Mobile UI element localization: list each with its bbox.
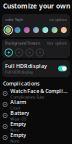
staticText: Empty: [10, 131, 26, 138]
staticText: Alarm: [10, 98, 26, 105]
button[interactable]: Watch Face & Complications: [0, 88, 72, 99]
staticText: Wear OS: [10, 116, 26, 122]
staticText: Full HDR display: [5, 69, 33, 75]
staticText: Complications Suite: [10, 94, 44, 100]
button[interactable]: Full HDR display: [58, 66, 67, 71]
button[interactable]: Empty: [0, 121, 72, 132]
staticText: color Style: [5, 17, 23, 22]
staticText: six options: [49, 17, 67, 22]
staticText: Background Texture: [5, 40, 40, 46]
staticText: Empty: [10, 120, 26, 127]
button[interactable]: Battery: [0, 110, 72, 121]
button[interactable]: Alarm: [0, 99, 72, 110]
button[interactable]: Empty: [0, 132, 72, 143]
staticText: Full HDR display: [5, 62, 47, 69]
staticText: four options: [47, 40, 67, 46]
staticText: Customize your own: [3, 2, 70, 10]
staticText: None: [10, 138, 19, 144]
staticText: None: [10, 127, 19, 133]
staticText: Watch Face & Complications: [10, 87, 67, 94]
staticText: Complications: [3, 80, 40, 87]
staticText: Battery: [10, 109, 29, 116]
staticText: Clock: [10, 105, 20, 111]
